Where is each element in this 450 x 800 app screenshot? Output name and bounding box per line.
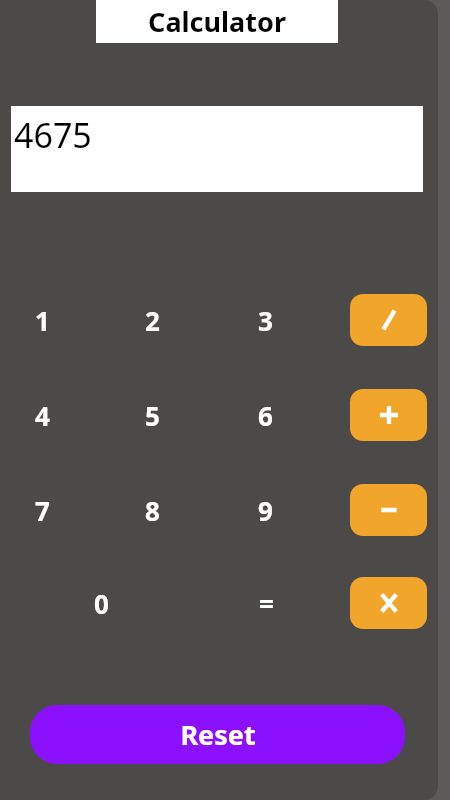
button[interactable]: 2 bbox=[118, 286, 186, 354]
button[interactable]: Multiply bbox=[350, 577, 427, 629]
button[interactable]: 3 bbox=[231, 286, 299, 354]
button[interactable]: 8 bbox=[118, 476, 186, 544]
button[interactable]: Calculator bbox=[96, 0, 338, 43]
staticText: 8 bbox=[145, 493, 160, 528]
staticText: 6 bbox=[258, 398, 273, 433]
staticText: Calculator bbox=[148, 3, 286, 40]
button[interactable]: 4675 bbox=[11, 106, 423, 192]
staticText: 3 bbox=[258, 303, 273, 338]
staticText: 2 bbox=[145, 303, 160, 338]
button[interactable]: 6 bbox=[231, 381, 299, 449]
button[interactable]: Plus bbox=[350, 389, 427, 441]
staticText: = bbox=[259, 586, 274, 621]
button[interactable]: 4 bbox=[8, 381, 76, 449]
staticText: 0 bbox=[94, 586, 109, 621]
button[interactable]: 1 bbox=[8, 286, 76, 354]
staticText: 7 bbox=[35, 493, 50, 528]
staticText: 1 bbox=[35, 303, 50, 338]
staticText: Reset bbox=[180, 716, 256, 753]
staticText: 4 bbox=[35, 398, 50, 433]
staticText: 9 bbox=[258, 493, 273, 528]
button[interactable]: Reset bbox=[30, 705, 405, 764]
button[interactable]: 5 bbox=[118, 381, 186, 449]
staticText: 4675 bbox=[14, 112, 92, 158]
staticText: 5 bbox=[145, 398, 160, 433]
button[interactable]: Divide bbox=[350, 294, 427, 346]
button[interactable]: 7 bbox=[8, 476, 76, 544]
button[interactable]: Minus bbox=[350, 484, 427, 536]
button[interactable]: 9 bbox=[231, 476, 299, 544]
button[interactable]: 0 bbox=[67, 569, 135, 637]
button[interactable]: = bbox=[232, 569, 300, 637]
